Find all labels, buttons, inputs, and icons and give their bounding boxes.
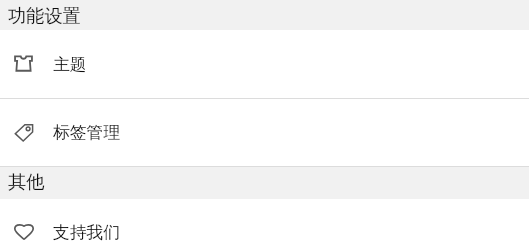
button[interactable]: 主题 <box>0 30 529 99</box>
button[interactable]: 标签管理 <box>0 99 529 167</box>
staticText: 支持我们 <box>53 222 121 243</box>
button[interactable]: 支持我们 <box>0 199 529 251</box>
staticText: 主题 <box>53 54 87 75</box>
staticText: 标签管理 <box>53 122 121 143</box>
staticText: 功能设置 <box>8 4 81 27</box>
staticText: 其他 <box>8 170 45 193</box>
